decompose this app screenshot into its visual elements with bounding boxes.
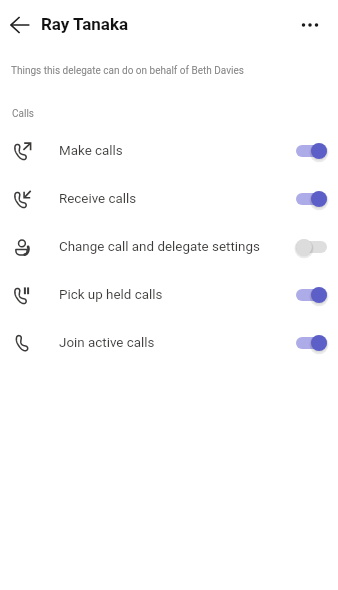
button[interactable] [296,284,327,306]
staticText: Calls [12,108,34,120]
button[interactable]: Change call and delegate settings [0,223,338,271]
staticText: Receive calls [59,191,296,207]
staticText: Make calls [59,143,296,159]
staticText: Things this delegate can do on behalf of… [11,65,244,77]
button[interactable] [296,140,327,162]
button[interactable]: Pick up held calls [0,271,338,319]
button[interactable]: Join active calls [0,319,338,367]
button[interactable] [296,188,327,210]
button[interactable]: More options [294,9,326,41]
button[interactable] [296,236,327,258]
button[interactable] [296,332,327,354]
button[interactable]: Back [4,9,36,41]
staticText: Pick up held calls [59,287,296,303]
staticText: Join active calls [59,335,296,351]
button[interactable]: Make calls [0,127,338,175]
button[interactable]: Receive calls [0,175,338,223]
staticText: Change call and delegate settings [59,239,296,255]
staticText: Ray Tanaka [41,14,129,34]
